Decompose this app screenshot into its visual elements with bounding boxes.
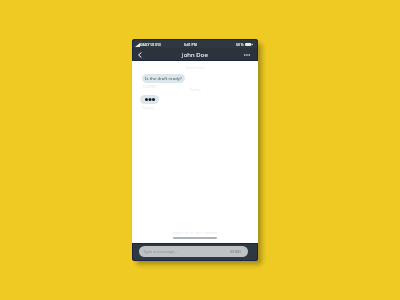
- staticText: 6:41 PM: [184, 42, 197, 47]
- button[interactable]: Is the draft ready?: [142, 74, 185, 83]
- button[interactable]: Typing indicator: [140, 95, 159, 104]
- staticText: John Doe: [182, 51, 208, 59]
- button[interactable]: Back: [134, 49, 145, 60]
- staticText: Typing...: [142, 105, 157, 110]
- staticText: DAILY UI 013: [140, 42, 161, 47]
- staticText: Type a message...: [143, 249, 178, 255]
- button[interactable]: Type a message...: [139, 246, 248, 257]
- staticText: Is the draft ready?: [145, 76, 182, 82]
- button[interactable]: More options: [241, 49, 252, 61]
- staticText: 6:42PM: [143, 84, 156, 89]
- staticText: Swipe up for more options: [132, 230, 258, 235]
- staticText: 60 %: [236, 42, 244, 47]
- button[interactable]: SEND: [230, 249, 241, 254]
